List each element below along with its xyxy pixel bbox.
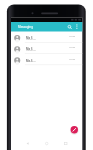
staticText: Lorem ip: [26, 49, 36, 52]
staticText: Messaging: [18, 25, 33, 29]
button[interactable]: [11, 32, 82, 43]
staticText: Mo S: [26, 59, 33, 63]
staticText: 10:30: [69, 34, 76, 37]
staticText: Lorem ip: [26, 38, 36, 41]
button[interactable]: Home: [40, 140, 53, 147]
button[interactable]: Compose message: [71, 126, 78, 133]
staticText: 10:30: [69, 45, 76, 48]
button[interactable]: Recent apps: [59, 140, 72, 147]
staticText: Mo S: [26, 47, 33, 51]
button[interactable]: More options: [75, 22, 83, 32]
staticText: Lorem ip: [26, 60, 36, 63]
staticText: 10:30: [69, 57, 76, 60]
button[interactable]: [11, 43, 82, 54]
button[interactable]: [11, 54, 82, 65]
button[interactable]: Back: [21, 140, 34, 147]
staticText: Mo S: [26, 36, 33, 40]
button[interactable]: Search: [66, 22, 75, 32]
